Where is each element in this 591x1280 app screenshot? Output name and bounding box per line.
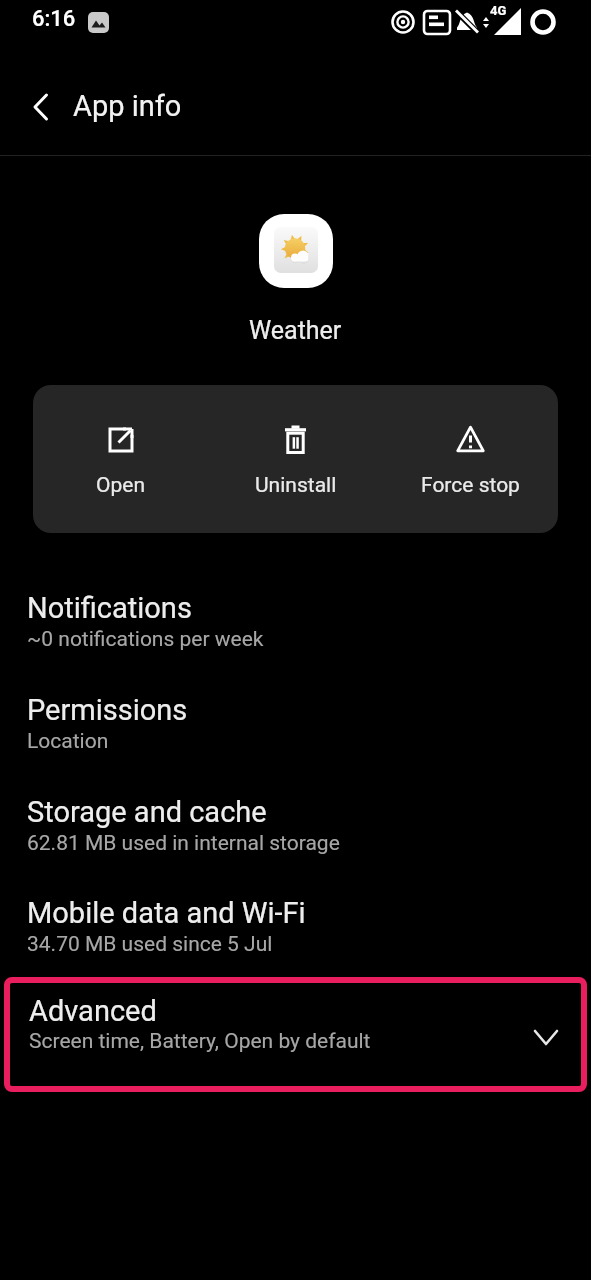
staticText: 4G xyxy=(490,3,507,18)
staticText: App info xyxy=(73,89,182,123)
button[interactable]: Uninstall xyxy=(208,385,383,533)
button[interactable]: Open xyxy=(33,385,208,533)
staticText: Permissions xyxy=(27,693,188,727)
staticText: ~0 notifications per week xyxy=(27,627,264,652)
staticText: Notifications xyxy=(27,591,192,625)
button[interactable] xyxy=(18,84,64,130)
staticText: Force stop xyxy=(421,473,520,498)
staticText: 34.70 MB used since 5 Jul xyxy=(27,932,273,957)
staticText: Weather xyxy=(249,316,342,345)
button[interactable]: Storage and cache xyxy=(0,795,591,891)
button[interactable]: Notifications xyxy=(0,591,591,687)
staticText: Mobile data and Wi-Fi xyxy=(27,896,306,930)
staticText: 6:16 xyxy=(32,6,76,32)
staticText: Storage and cache xyxy=(27,795,267,829)
staticText: Uninstall xyxy=(255,473,337,498)
button[interactable]: Mobile data and Wi-Fi xyxy=(0,896,591,992)
staticText: Screen time, Battery, Open by default xyxy=(29,1029,371,1054)
staticText: Open xyxy=(96,473,145,498)
button[interactable]: Permissions xyxy=(0,693,591,789)
button[interactable]: Advanced xyxy=(4,977,587,1092)
staticText: 62.81 MB used in internal storage xyxy=(27,831,340,856)
button[interactable]: Force stop xyxy=(383,385,558,533)
staticText: Location xyxy=(27,729,109,754)
staticText: Advanced xyxy=(29,994,157,1028)
